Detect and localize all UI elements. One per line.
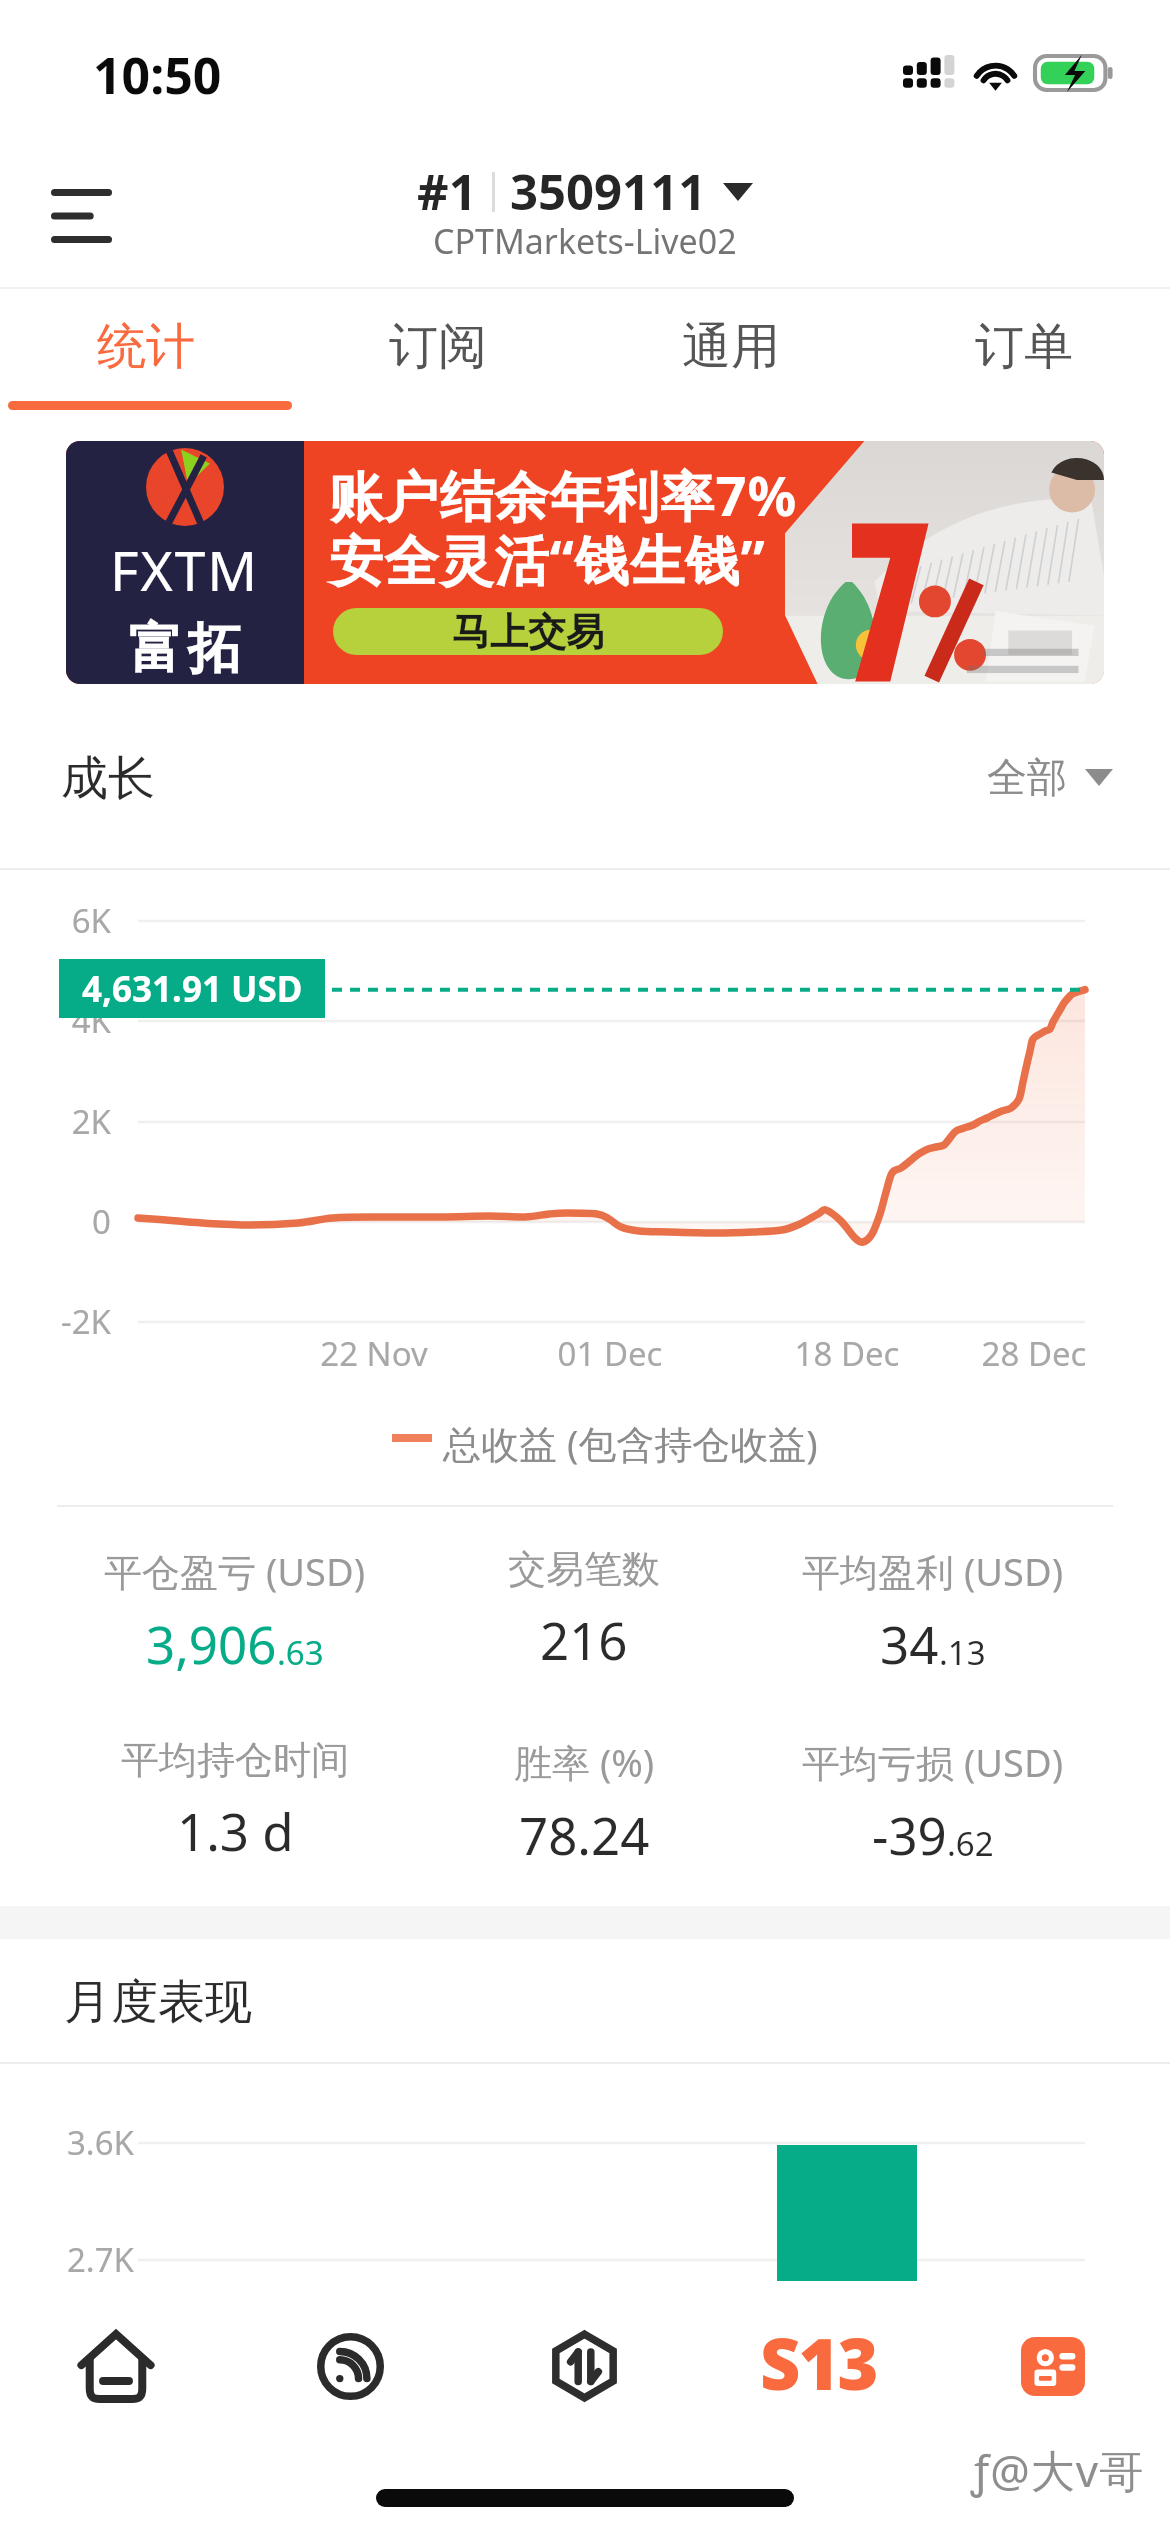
button[interactable]: 马上交易 xyxy=(333,608,723,655)
staticText: 6K xyxy=(0,898,111,943)
button[interactable]: 通用 xyxy=(584,291,877,410)
staticText: 平均持仓时间 xyxy=(121,1736,349,1784)
staticText: FXTM xyxy=(110,532,260,607)
button[interactable]: 全部 xyxy=(975,738,1125,816)
staticText: 2.7K xyxy=(0,2237,134,2282)
button[interactable]: Signals xyxy=(240,2280,460,2452)
staticText: .62 xyxy=(947,1821,994,1866)
button[interactable]: 订单 xyxy=(877,291,1170,410)
staticText: -39 xyxy=(872,1800,947,1869)
staticText: 28 Dec xyxy=(884,1331,1170,1376)
staticText: 账户结余年利率7% xyxy=(329,458,798,532)
staticText: 月度表现 xyxy=(64,1973,252,2032)
staticText: S13 xyxy=(760,2315,877,2410)
button[interactable]: FXTM xyxy=(66,441,1104,684)
staticText: .63 xyxy=(277,1630,324,1675)
button[interactable]: S13 xyxy=(708,2280,928,2452)
staticText: 富拓 xyxy=(126,615,244,683)
staticText: CPTMarkets-Live02 xyxy=(433,218,737,264)
staticText: 安全灵活“钱生钱” xyxy=(329,522,766,596)
button[interactable]: Menu xyxy=(20,160,142,272)
staticText: 总收益 (包含持仓收益) xyxy=(443,1417,818,1469)
staticText: 4K xyxy=(0,998,111,1043)
staticText: 订阅 xyxy=(389,316,487,378)
button[interactable]: 统计 xyxy=(0,291,292,410)
button[interactable]: Profile xyxy=(943,2280,1163,2452)
staticText: 0 xyxy=(0,1199,111,1244)
staticText: 10:50 xyxy=(93,41,222,109)
staticText: 马上交易 xyxy=(452,608,604,655)
staticText: 4,631.91 USD xyxy=(82,965,303,1013)
staticText: 3,906 xyxy=(146,1609,277,1678)
staticText: 通用 xyxy=(682,316,780,378)
button[interactable]: Trade xyxy=(474,2280,694,2452)
staticText: 统计 xyxy=(97,316,195,378)
staticText: ƒ@大v哥 xyxy=(971,2440,1145,2500)
staticText: 平均亏损 (USD) xyxy=(802,1736,1064,1788)
staticText: 平均盈利 (USD) xyxy=(802,1545,1064,1597)
staticText: 22 Nov xyxy=(224,1331,524,1376)
staticText: 3.6K xyxy=(0,2120,134,2165)
staticText: 全部 xyxy=(987,752,1067,802)
staticText: -2K xyxy=(0,1299,111,1344)
button[interactable]: #1 xyxy=(407,150,763,233)
staticText: 34 xyxy=(880,1609,939,1678)
staticText: 平仓盈亏 (USD) xyxy=(104,1545,366,1597)
button[interactable]: Home xyxy=(6,2280,226,2452)
staticText: 交易笔数 xyxy=(508,1545,660,1593)
staticText: 2K xyxy=(0,1099,111,1144)
staticText: 成长 xyxy=(61,749,155,808)
staticText: 订单 xyxy=(975,316,1073,378)
staticText: 1.3 d xyxy=(177,1796,294,1865)
staticText: 01 Dec xyxy=(460,1331,760,1376)
staticText: .13 xyxy=(939,1630,986,1675)
staticText: 3509111 xyxy=(510,158,707,225)
staticText: 胜率 (%) xyxy=(514,1736,655,1788)
button[interactable]: 订阅 xyxy=(292,291,584,410)
staticText: #1 xyxy=(417,158,477,225)
staticText: 18 Dec xyxy=(697,1331,997,1376)
staticText: 78.24 xyxy=(519,1800,650,1869)
staticText: 216 xyxy=(540,1605,628,1674)
